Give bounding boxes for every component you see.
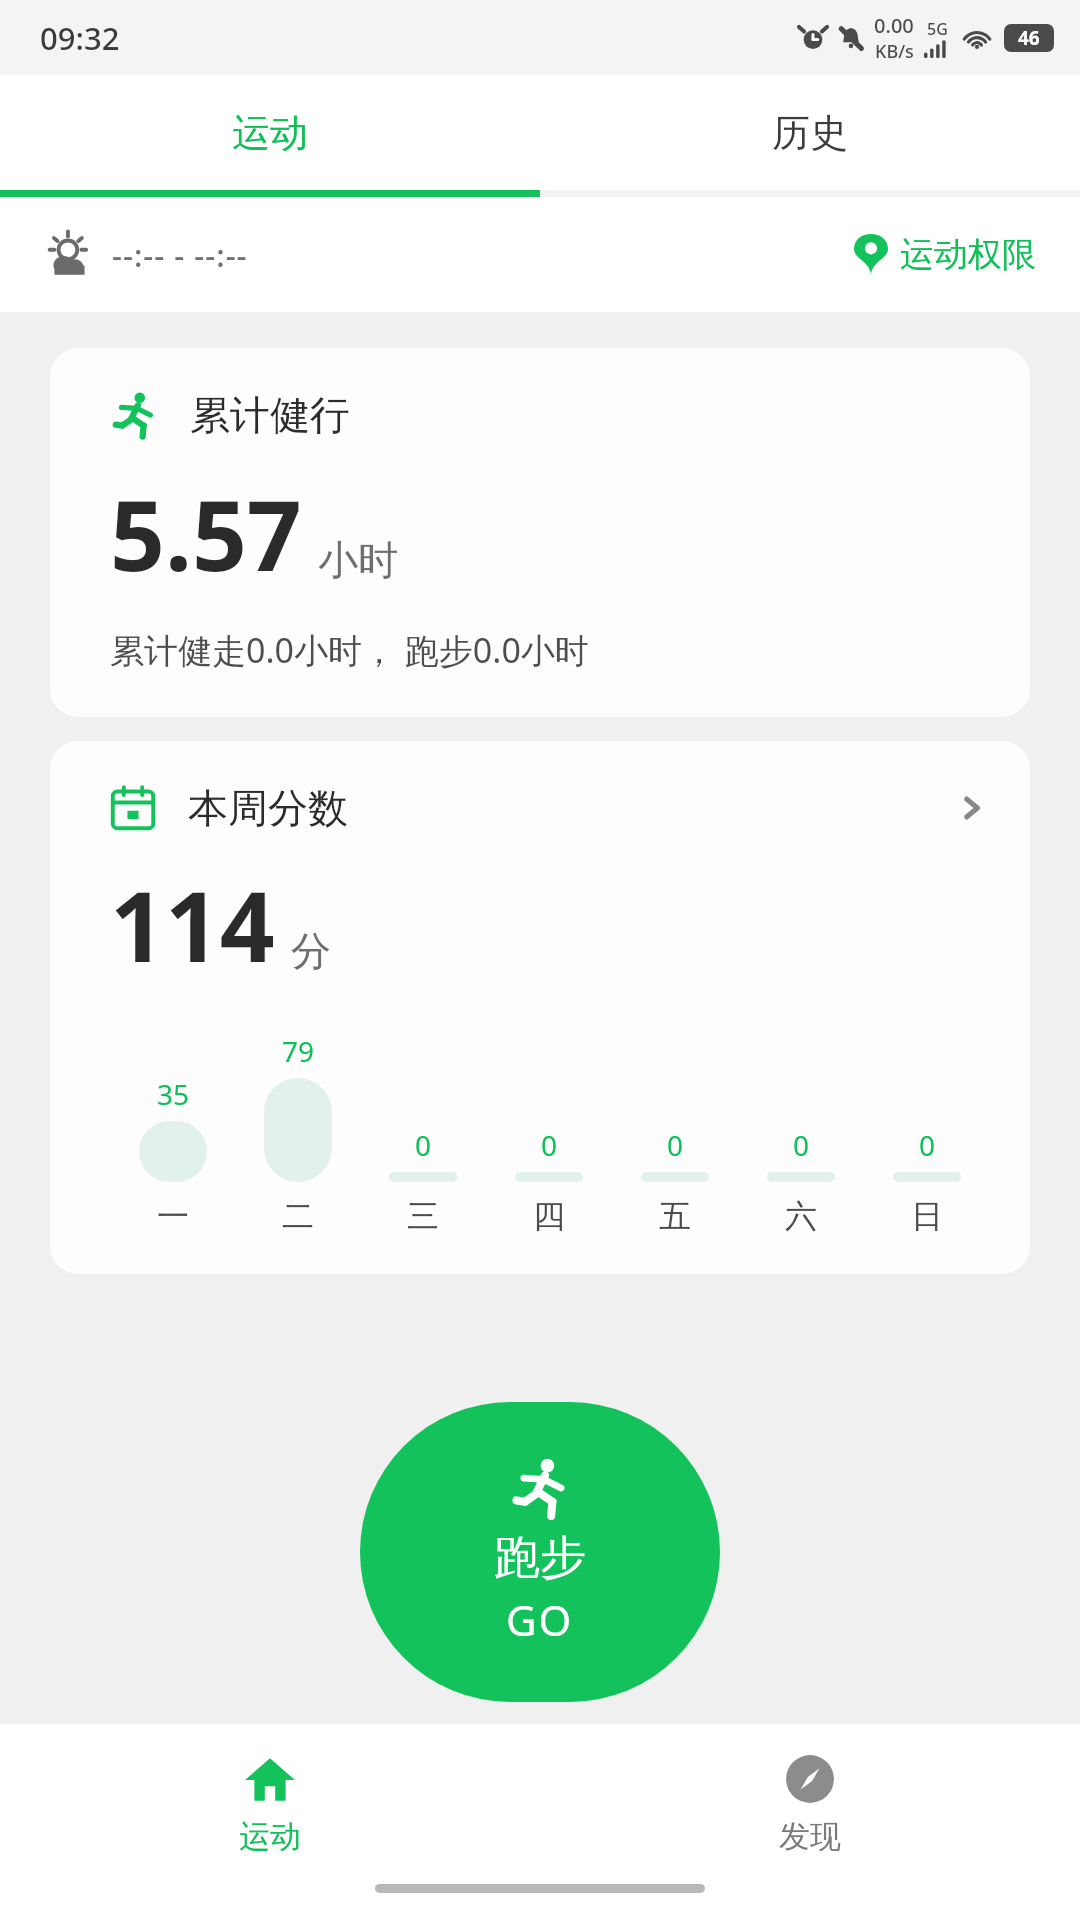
staticText: 0 [667, 1126, 684, 1164]
button[interactable]: 历史 [540, 75, 1080, 190]
button[interactable]: 跑步 [360, 1402, 720, 1702]
staticText: 一 [157, 1196, 189, 1236]
staticText: 114 [110, 859, 275, 990]
button[interactable]: 发现 [540, 1724, 1080, 1884]
staticText: 运动 [232, 109, 308, 157]
staticText: 历史 [772, 109, 848, 157]
staticText: KB/s [875, 39, 914, 64]
staticText: 46 [1018, 25, 1040, 51]
staticText: 四 [533, 1196, 565, 1236]
staticText: 0 [541, 1126, 558, 1164]
staticText: 二 [282, 1196, 314, 1236]
staticText: 0.00 [874, 12, 914, 39]
staticText: 日 [911, 1196, 943, 1236]
staticText: 5G [927, 18, 948, 40]
staticText: 0 [919, 1126, 936, 1164]
staticText: 分 [291, 926, 331, 976]
staticText: 本周分数 [188, 783, 348, 833]
button[interactable]: 运动 [0, 75, 540, 190]
staticText: 五 [659, 1196, 691, 1236]
staticText: 5.57 [110, 468, 302, 599]
staticText: 小时 [318, 535, 398, 585]
staticText: GO [506, 1591, 574, 1648]
button[interactable]: 累计健行 [50, 348, 1030, 717]
other: Weather [44, 229, 96, 281]
other: More [954, 790, 990, 826]
staticText: 0 [793, 1126, 810, 1164]
staticText: 09:32 [40, 17, 120, 59]
staticText: 累计健行 [190, 390, 350, 440]
button[interactable]: 运动权限 [854, 233, 1036, 276]
staticText: --:-- - --:-- [112, 234, 248, 276]
button[interactable]: 本周分数 [50, 741, 1030, 1274]
staticText: 六 [785, 1196, 817, 1236]
staticText: 发现 [779, 1817, 841, 1856]
button[interactable]: 运动 [0, 1724, 540, 1884]
staticText: 运动 [239, 1817, 301, 1856]
staticText: 三 [407, 1196, 439, 1236]
staticText: 运动权限 [900, 233, 1036, 276]
staticText: 79 [282, 1032, 315, 1070]
staticText: 0 [415, 1126, 432, 1164]
staticText: 累计健走0.0小时， 跑步0.0小时 [110, 627, 589, 673]
staticText: 35 [157, 1075, 190, 1113]
staticText: 跑步 [494, 1529, 586, 1587]
